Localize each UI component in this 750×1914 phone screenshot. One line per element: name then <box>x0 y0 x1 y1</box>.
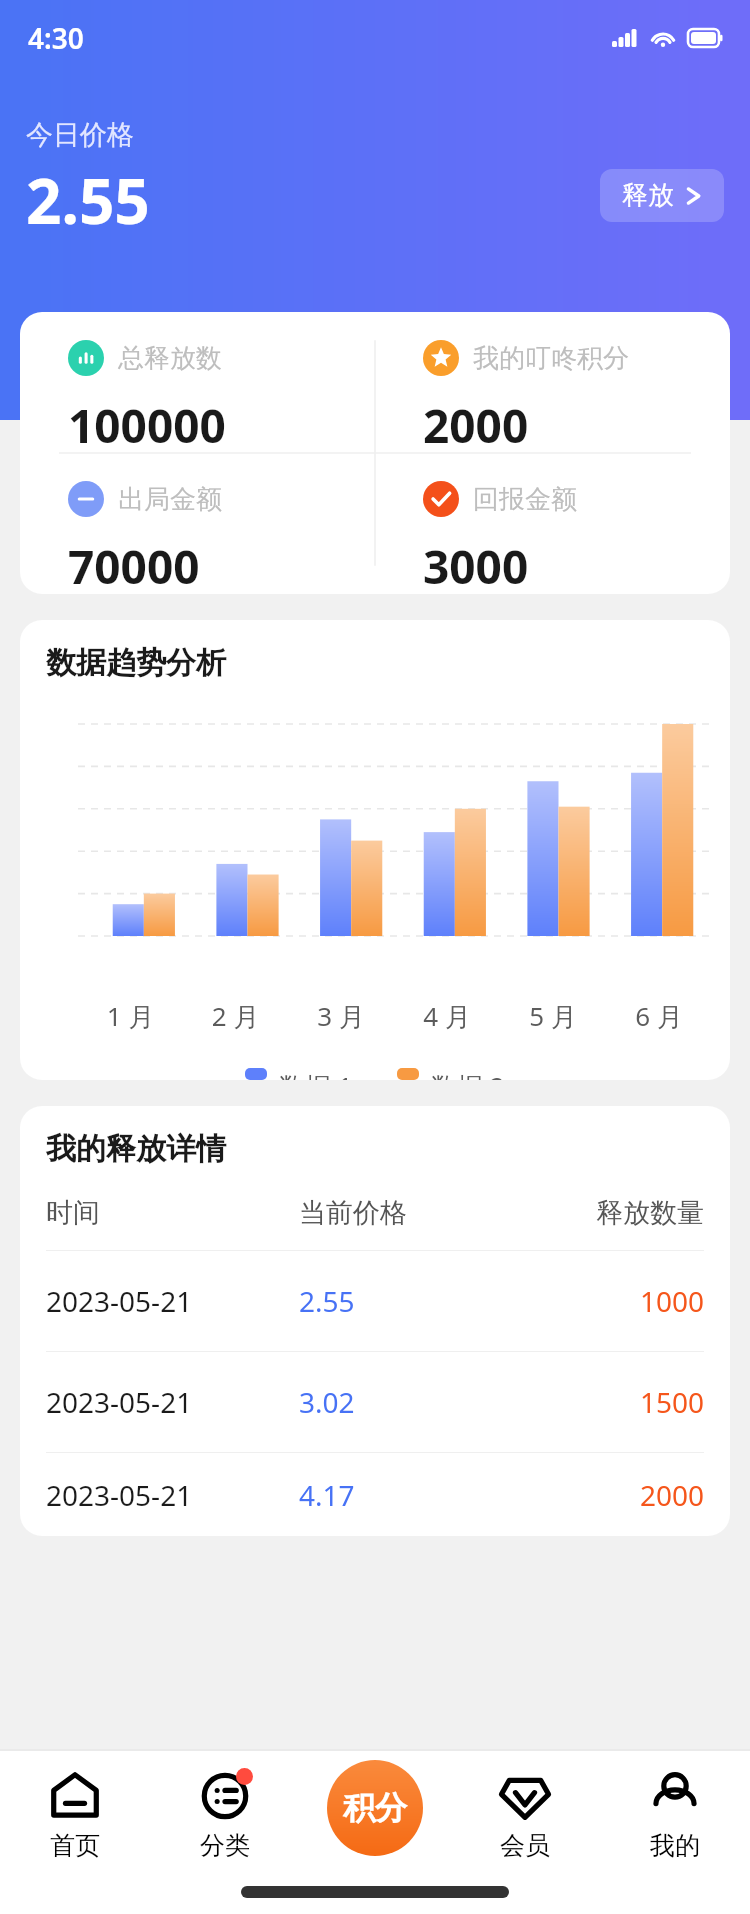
staticText: 3000 <box>423 535 529 594</box>
staticText: 释放 <box>622 179 674 212</box>
staticText: 4.17 <box>299 1476 518 1514</box>
button[interactable]: 会员 <box>450 1750 600 1870</box>
staticText: 当前价格 <box>299 1196 518 1230</box>
staticText: 3 月 <box>288 998 394 1034</box>
button[interactable]: 回报金额 <box>375 453 730 594</box>
button[interactable]: 2023-05-21 <box>20 1251 730 1351</box>
button[interactable]: 我的叮咚积分 <box>375 312 730 453</box>
staticText: 2000 <box>423 394 529 453</box>
staticText: 2023-05-21 <box>46 1282 299 1320</box>
staticText: 2023-05-21 <box>46 1383 299 1421</box>
staticText: 2.55 <box>299 1282 518 1320</box>
staticText: 数据 2 <box>431 1068 505 1080</box>
button[interactable]: 2023-05-21 <box>20 1453 730 1536</box>
button[interactable]: 出局金额 <box>20 453 375 594</box>
staticText: 回报金额 <box>473 483 577 516</box>
button[interactable]: 数据 2 <box>397 1068 505 1080</box>
staticText: 6 月 <box>606 998 712 1034</box>
staticText: 时间 <box>46 1196 299 1230</box>
staticText: 总释放数 <box>118 342 222 375</box>
button[interactable]: 积分 <box>327 1760 423 1856</box>
button[interactable]: 2023-05-21 <box>20 1352 730 1452</box>
staticText: 1500 <box>518 1383 704 1421</box>
staticText: 2.55 <box>26 158 150 242</box>
staticText: 4:30 <box>28 19 84 57</box>
button[interactable]: 释放 <box>600 169 724 222</box>
staticText: 分类 <box>200 1830 250 1861</box>
staticText: 2 月 <box>183 998 288 1034</box>
button[interactable]: 总释放数 <box>20 312 375 453</box>
staticText: 释放数量 <box>518 1196 704 1230</box>
button[interactable]: 分类 <box>150 1750 300 1870</box>
staticText: 2023-05-21 <box>46 1476 299 1514</box>
staticText: 我的叮咚积分 <box>473 342 629 375</box>
staticText: 1000 <box>518 1282 704 1320</box>
button[interactable]: 我的 <box>600 1750 750 1870</box>
button[interactable]: 数据 1 <box>245 1068 353 1080</box>
staticText: 100000 <box>68 394 226 453</box>
staticText: 4 月 <box>394 998 500 1034</box>
staticText: 数据 1 <box>279 1068 353 1080</box>
staticText: 3.02 <box>299 1383 518 1421</box>
staticText: 首页 <box>50 1830 100 1861</box>
staticText: 积分 <box>343 1788 407 1828</box>
staticText: 会员 <box>500 1830 550 1861</box>
staticText: 出局金额 <box>118 483 222 516</box>
staticText: 数据趋势分析 <box>46 644 226 682</box>
staticText: 今日价格 <box>26 118 134 152</box>
staticText: 我的 <box>650 1830 700 1861</box>
staticText: 1 月 <box>78 998 183 1034</box>
staticText: 我的释放详情 <box>46 1130 226 1168</box>
staticText: 70000 <box>68 535 200 594</box>
staticText: 2000 <box>518 1476 704 1514</box>
staticText: 5 月 <box>500 998 606 1034</box>
button[interactable]: 首页 <box>0 1750 150 1870</box>
